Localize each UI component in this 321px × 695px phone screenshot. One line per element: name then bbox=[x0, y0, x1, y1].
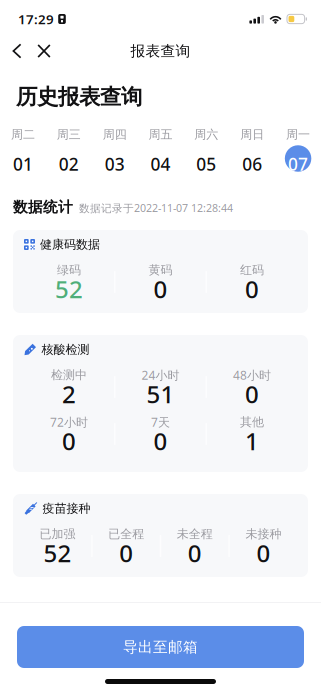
staticText: 07 bbox=[288, 152, 308, 175]
staticText: 周五 bbox=[148, 127, 172, 142]
staticText: 0 bbox=[119, 537, 133, 569]
staticText: 健康码数据 bbox=[40, 237, 100, 252]
staticText: 检测中 bbox=[51, 368, 87, 382]
button[interactable]: 周四 bbox=[92, 127, 138, 177]
staticText: 72小时 bbox=[50, 414, 88, 430]
staticText: 红码 bbox=[240, 263, 264, 277]
staticText: 导出至邮箱 bbox=[123, 638, 198, 656]
staticText: 0 bbox=[256, 537, 270, 569]
staticText: 52 bbox=[55, 273, 83, 305]
staticText: 已全程 bbox=[108, 527, 144, 541]
staticText: 周四 bbox=[103, 127, 127, 142]
staticText: 黄码 bbox=[148, 263, 172, 277]
staticText: 未全程 bbox=[177, 527, 213, 541]
staticText: 0 bbox=[153, 425, 167, 457]
button[interactable]: 周五 bbox=[138, 127, 183, 177]
staticText: 48小时 bbox=[233, 367, 271, 383]
button[interactable]: 周一 bbox=[275, 127, 321, 177]
staticText: 06 bbox=[242, 152, 262, 175]
button[interactable]: 周三 bbox=[46, 127, 92, 177]
staticText: 核酸检测 bbox=[41, 342, 89, 357]
staticText: 52 bbox=[44, 537, 72, 569]
staticText: 24小时 bbox=[141, 367, 179, 383]
staticText: 05 bbox=[196, 152, 216, 175]
staticText: 01 bbox=[13, 152, 33, 175]
staticText: 0 bbox=[62, 425, 76, 457]
staticText: 疫苗接种 bbox=[42, 501, 90, 516]
button[interactable]: 周二 bbox=[0, 127, 46, 177]
staticText: 03 bbox=[105, 152, 125, 175]
staticText: 04 bbox=[150, 152, 170, 175]
staticText: 0 bbox=[188, 537, 202, 569]
button[interactable]: 关闭 bbox=[30, 38, 58, 64]
staticText: 0 bbox=[245, 273, 259, 305]
staticText: 7天 bbox=[151, 414, 170, 430]
staticText: 数据记录于2022-11-07 12:28:44 bbox=[79, 201, 233, 215]
staticText: 周三 bbox=[57, 127, 81, 142]
staticText: 1 bbox=[245, 425, 259, 457]
button[interactable]: 周日 bbox=[229, 127, 275, 177]
staticText: 绿码 bbox=[57, 263, 81, 277]
staticText: 51 bbox=[146, 378, 174, 410]
staticText: 02 bbox=[59, 152, 79, 175]
staticText: 0 bbox=[245, 378, 259, 410]
staticText: 报表查询 bbox=[130, 42, 190, 60]
button[interactable]: 返回 bbox=[4, 38, 30, 64]
button[interactable]: 导出至邮箱 bbox=[0, 626, 321, 668]
staticText: 周日 bbox=[240, 127, 264, 142]
staticText: 周一 bbox=[286, 127, 310, 142]
staticText: 历史报表查询 bbox=[16, 84, 142, 110]
staticText: 周六 bbox=[194, 127, 218, 142]
button[interactable]: 周六 bbox=[183, 127, 229, 177]
staticText: 其他 bbox=[240, 415, 264, 429]
staticText: 周二 bbox=[11, 127, 35, 142]
staticText: 已加强 bbox=[40, 527, 76, 541]
staticText: 17:29 bbox=[18, 10, 54, 28]
staticText: 0 bbox=[153, 273, 167, 305]
staticText: 未接种 bbox=[245, 527, 281, 541]
staticText: 数据统计 bbox=[13, 198, 73, 216]
staticText: 2 bbox=[62, 378, 76, 410]
